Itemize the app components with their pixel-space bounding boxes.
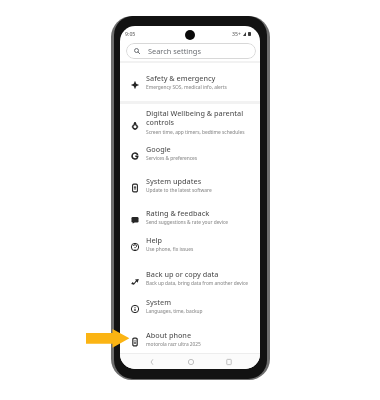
staticText: Search settings [148,46,201,56]
button[interactable]: Back up or copy data [120,262,260,293]
button[interactable]: Safety & emergency [120,66,260,97]
staticText: Services & preferences [146,155,198,162]
button[interactable]: Rating & feedback [120,201,260,232]
staticText: 35+ [232,30,241,37]
staticText: Google [146,144,171,154]
button[interactable]: Help [120,228,260,259]
staticText: Update to the latest software [146,187,212,194]
staticText: Rating & feedback [146,208,210,218]
button[interactable]: Search settings [126,43,256,59]
staticText: Back up or copy data [146,269,219,279]
staticText: Help [146,235,163,245]
staticText: motorola razr ultra 2025 [146,341,201,348]
button[interactable]: Home [183,354,199,369]
button[interactable]: About phone [120,323,260,354]
staticText: Back up data, bring data from another de… [146,280,249,287]
staticText: Digital Wellbeing & parental controls [146,108,244,128]
button[interactable]: System updates [120,169,260,200]
staticText: About phone [146,330,192,340]
button[interactable]: Digital Wellbeing & parental controls [120,103,260,141]
button[interactable]: System [120,290,260,321]
staticText: System updates [146,176,202,186]
staticText: Use phone, fix issues [146,246,194,253]
staticText: Safety & emergency [146,73,216,83]
button[interactable]: Back [144,354,160,369]
button[interactable]: Google [120,137,260,168]
staticText: Languages, time, backup [146,308,203,315]
button[interactable]: Recent apps [221,354,237,369]
staticText: Emergency SOS, medical info, alerts [146,84,227,91]
staticText: 9:05 [125,30,136,37]
staticText: Send suggestions & rate your device [146,219,228,226]
staticText: Screen time, app timers, bedtime schedul… [146,129,245,136]
staticText: System [146,297,172,307]
